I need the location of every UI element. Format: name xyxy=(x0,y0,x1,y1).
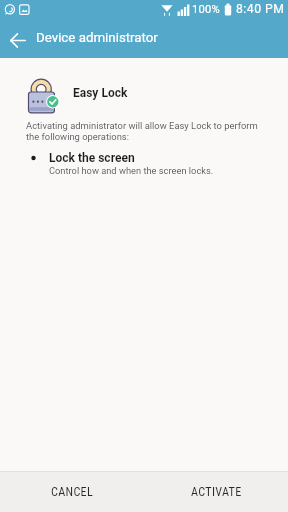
staticText: ACTIVATE xyxy=(191,485,242,499)
button[interactable] xyxy=(0,18,34,58)
staticText: 8:40 PM xyxy=(236,2,285,16)
staticText: Lock the screen xyxy=(49,151,135,165)
button[interactable]: ACTIVATE xyxy=(144,472,288,512)
button[interactable]: CANCEL xyxy=(0,472,144,512)
staticText: Easy Lock xyxy=(73,86,128,100)
staticText: 100% xyxy=(192,3,220,16)
staticText: Device administrator xyxy=(36,30,158,46)
staticText: Activating administrator will allow Easy… xyxy=(26,120,258,142)
staticText: CANCEL xyxy=(51,485,94,499)
staticText: Control how and when the screen locks. xyxy=(49,165,214,176)
